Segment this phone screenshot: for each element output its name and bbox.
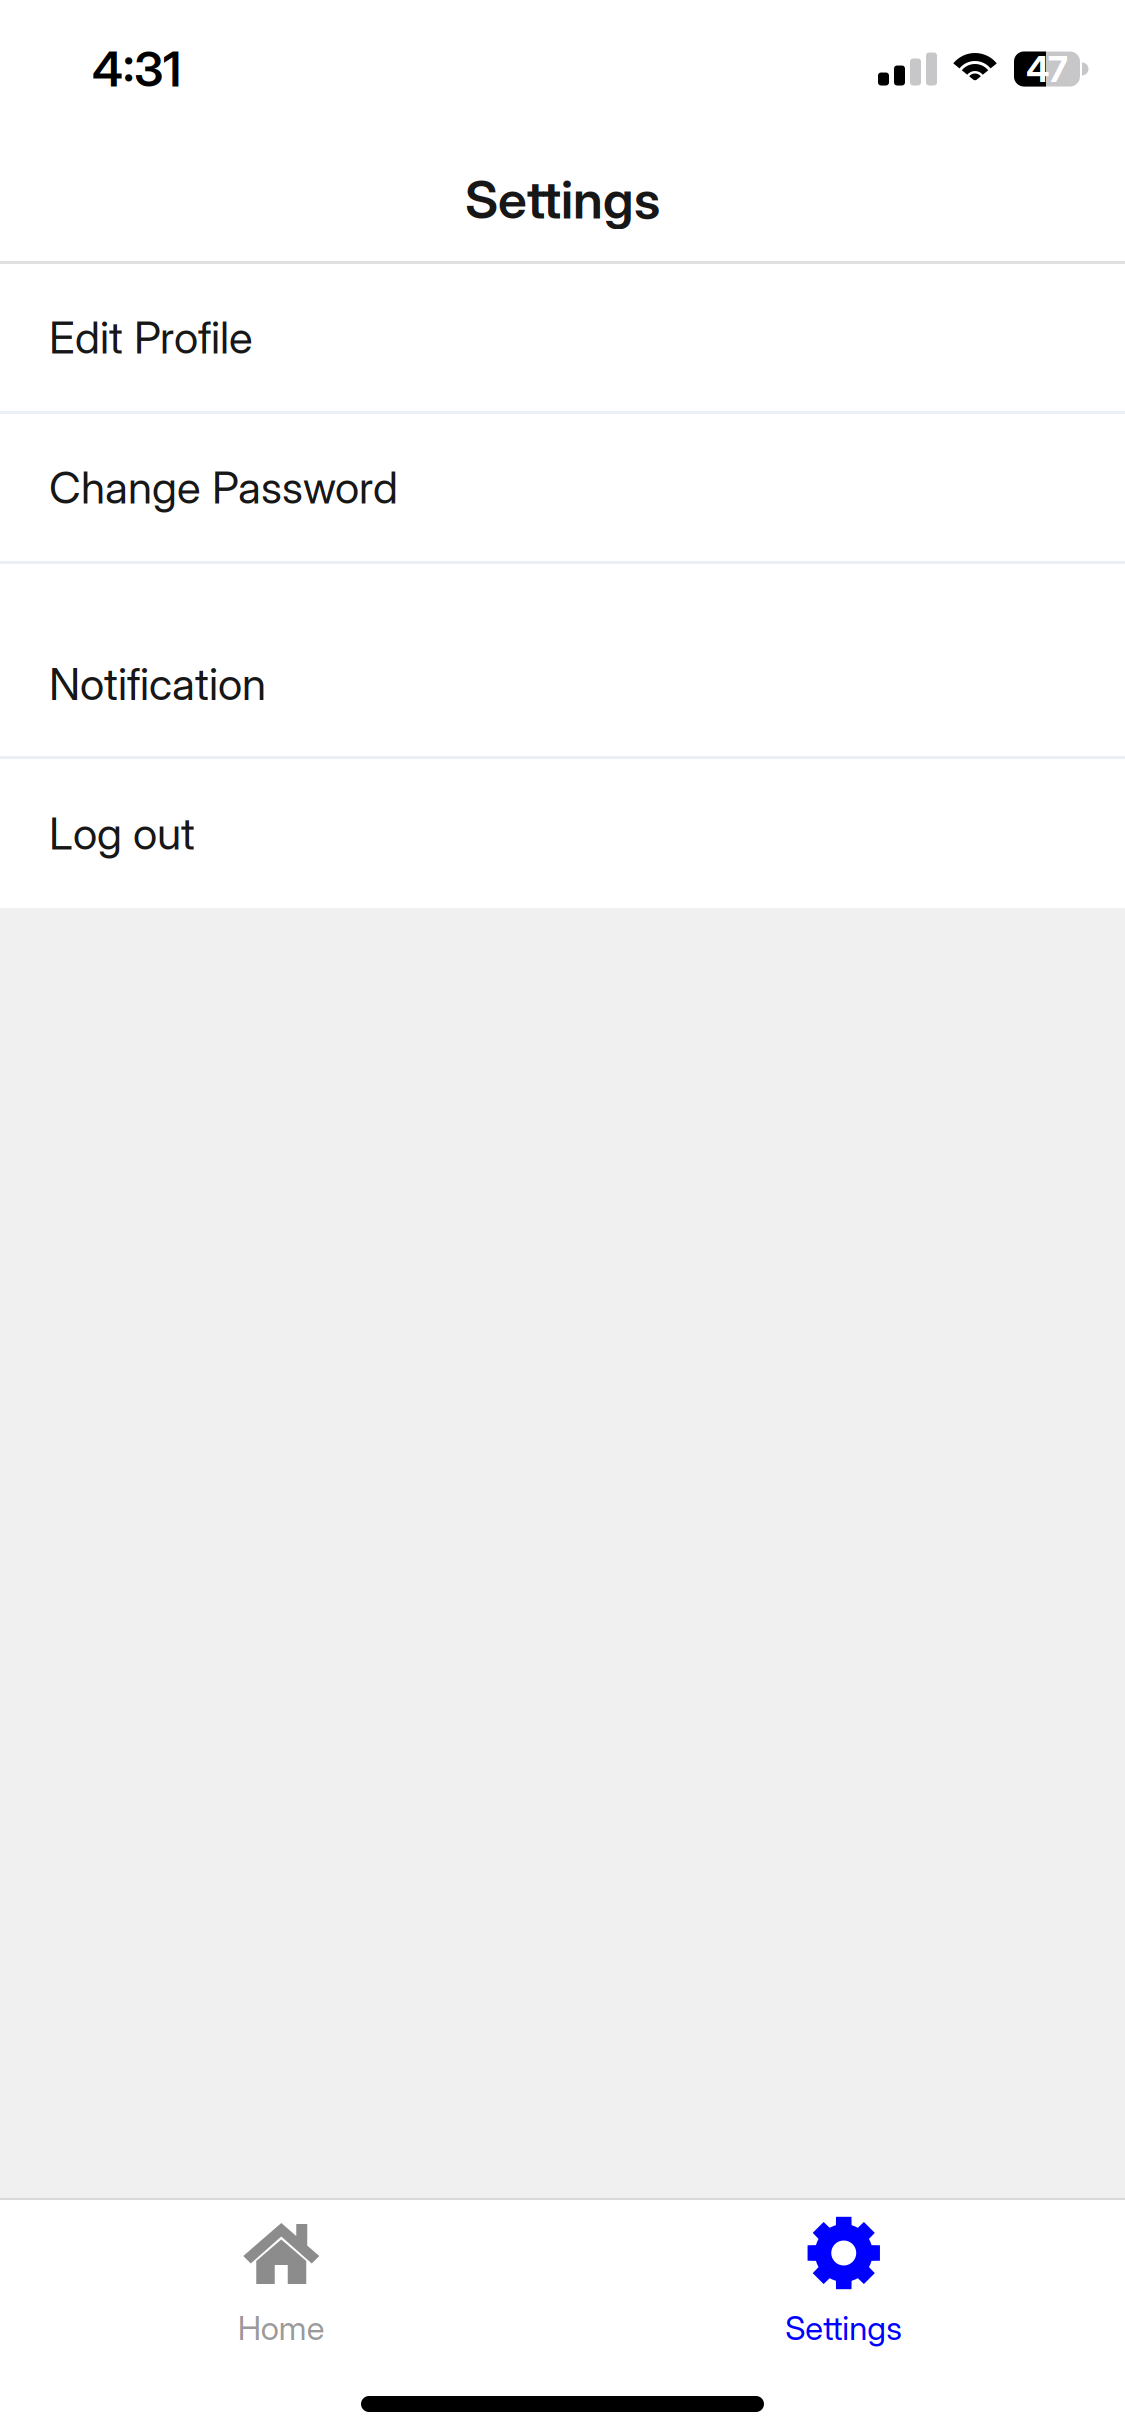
- staticText: Edit Profile: [49, 311, 253, 364]
- staticText: 4:31: [92, 40, 181, 98]
- button[interactable]: Notification: [0, 612, 1125, 756]
- button[interactable]: Change Password: [0, 414, 1125, 561]
- staticText: Notification: [49, 657, 266, 711]
- staticText: Change Password: [49, 461, 398, 514]
- staticText: 47: [1026, 47, 1068, 91]
- button[interactable]: Log out: [0, 759, 1125, 908]
- button[interactable]: Edit Profile: [0, 264, 1125, 411]
- staticText: Log out: [49, 807, 195, 860]
- button[interactable]: Settings: [562, 2216, 1125, 2348]
- staticText: Home: [238, 2308, 325, 2348]
- staticText: Settings: [465, 168, 660, 231]
- button[interactable]: Home: [0, 2216, 562, 2348]
- staticText: Settings: [785, 2308, 902, 2348]
